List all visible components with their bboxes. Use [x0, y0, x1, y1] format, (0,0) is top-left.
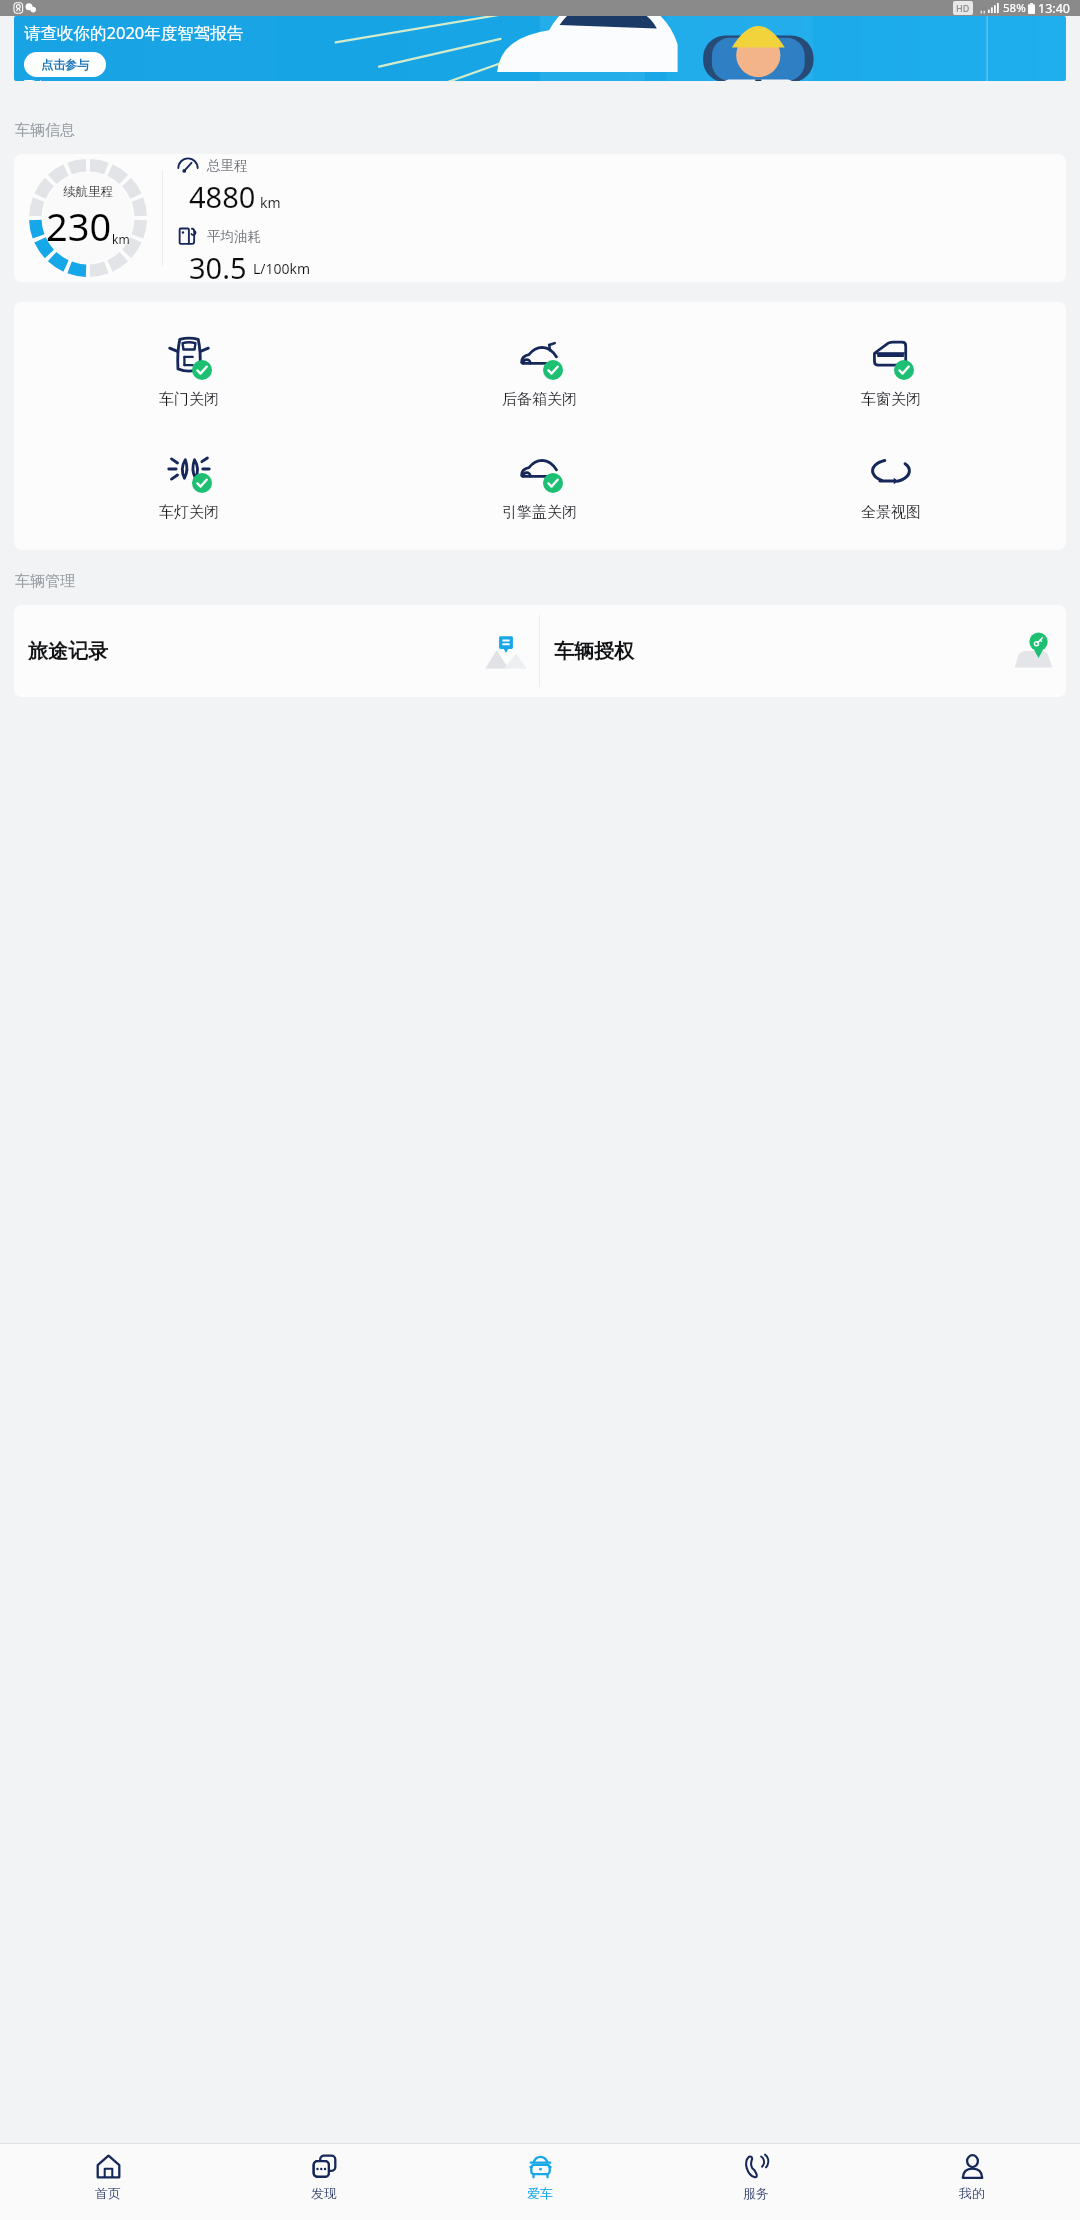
staticText: 首页	[95, 2185, 121, 2201]
staticText: 引擎盖关闭	[502, 503, 577, 522]
staticText: 服务	[743, 2185, 769, 2201]
staticText: 旅途记录	[28, 639, 108, 664]
staticText: 总里程	[207, 157, 248, 174]
button[interactable]: 后备箱关闭	[364, 324, 715, 415]
staticText: 我的	[959, 2185, 985, 2201]
staticText: 平均油耗	[207, 228, 261, 245]
staticText: 58%	[1003, 0, 1026, 16]
button[interactable]: 车辆授权	[540, 605, 1066, 697]
button[interactable]: 我的	[864, 2144, 1080, 2220]
staticText: 全景视图	[861, 503, 921, 522]
button[interactable]: 续航里程	[14, 154, 1066, 282]
button[interactable]: 旅途记录	[14, 605, 539, 697]
staticText: 4880	[189, 177, 256, 216]
staticText: 车辆信息	[15, 121, 75, 140]
staticText: 车灯关闭	[159, 503, 219, 522]
staticText: 车窗关闭	[861, 390, 921, 409]
staticText: 请查收你的2020年度智驾报告	[24, 21, 244, 44]
staticText: L/100km	[253, 259, 311, 278]
staticText: 发现	[311, 2185, 337, 2201]
staticText: 车辆管理	[15, 572, 75, 591]
button[interactable]: 引擎盖关闭	[364, 437, 715, 528]
button[interactable]: 全景视图	[715, 437, 1066, 528]
staticText: HD	[956, 2, 970, 14]
staticText: 车门关闭	[159, 390, 219, 409]
button[interactable]: 服务	[648, 2144, 864, 2220]
button[interactable]: 车门关闭	[14, 324, 364, 415]
button[interactable]: 请查收你的2020年度智驾报告	[14, 16, 1066, 81]
button[interactable]: 车灯关闭	[14, 437, 364, 528]
button[interactable]: 爱车	[432, 2144, 648, 2220]
button[interactable]: 车窗关闭	[715, 324, 1066, 415]
button[interactable]: 发现	[216, 2144, 432, 2220]
button[interactable]: 点击参与	[24, 52, 106, 77]
staticText: 车辆授权	[554, 639, 634, 664]
button[interactable]: 首页	[0, 2144, 216, 2220]
staticText: km	[260, 193, 281, 212]
staticText: 点击参与	[41, 57, 89, 72]
staticText: 续航里程	[63, 184, 113, 200]
staticText: 爱车	[527, 2185, 553, 2201]
staticText: 后备箱关闭	[502, 390, 577, 409]
staticText: 30.5	[189, 248, 247, 282]
staticText: 230	[46, 200, 112, 252]
staticText: km	[112, 231, 130, 247]
staticText: 13:40	[1038, 0, 1070, 16]
